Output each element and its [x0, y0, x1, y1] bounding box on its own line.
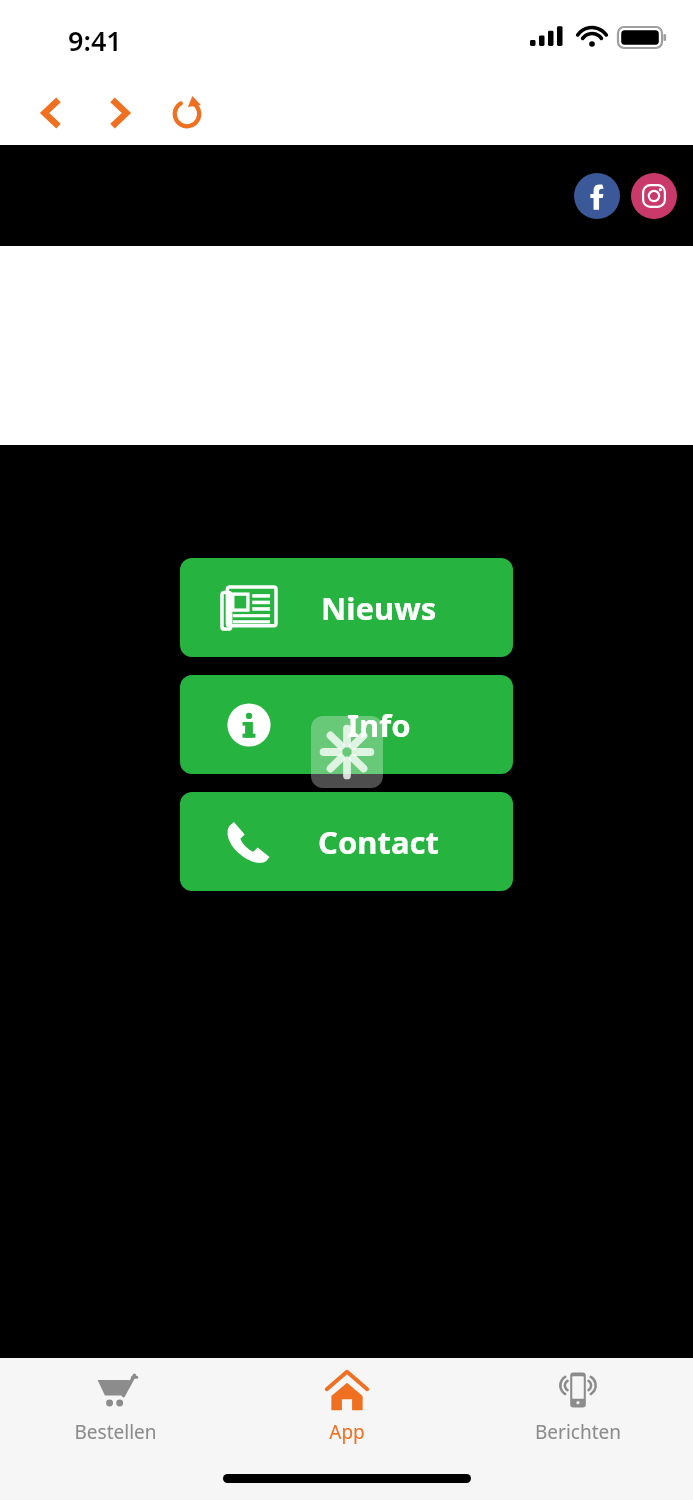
staticText: Info	[347, 704, 411, 746]
button[interactable]: Back	[28, 90, 73, 135]
staticText: Berichten	[535, 1419, 621, 1445]
button[interactable]: Contact	[180, 792, 513, 891]
staticText: 9:41	[68, 22, 122, 59]
staticText: App	[329, 1419, 365, 1445]
button[interactable]: Berichten	[462, 1358, 693, 1458]
button[interactable]: App	[231, 1358, 462, 1458]
button[interactable]: Bestellen	[0, 1358, 231, 1458]
button[interactable]: Reload	[164, 90, 209, 135]
staticText: Nieuws	[321, 587, 437, 629]
staticText: Bestellen	[74, 1419, 157, 1445]
button[interactable]: Nieuws	[180, 558, 513, 657]
button[interactable]: Facebook	[574, 173, 620, 219]
button[interactable]: Instagram	[631, 173, 677, 219]
button[interactable]: Forward	[97, 90, 142, 135]
button[interactable]: Info	[180, 675, 513, 774]
staticText: Contact	[318, 821, 439, 863]
